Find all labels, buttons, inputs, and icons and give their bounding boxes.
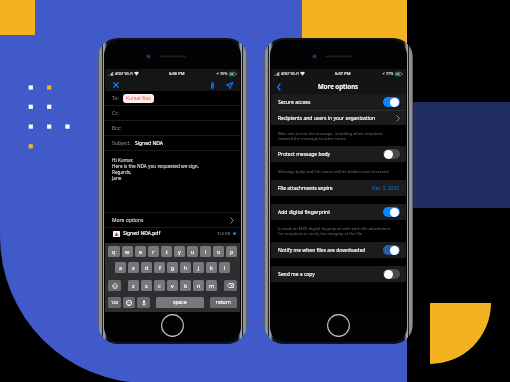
button[interactable]: q <box>108 246 120 257</box>
staticText: Cc: <box>112 110 119 117</box>
button[interactable]: v <box>167 280 178 291</box>
staticText: a <box>119 264 123 271</box>
staticText: Hi Kumar, <box>112 157 134 163</box>
staticText: 123 <box>111 300 119 306</box>
staticText: 76% <box>220 71 228 76</box>
staticText: Who can access the message, including wh… <box>278 131 383 136</box>
button[interactable]: Bcc: <box>112 121 234 135</box>
staticText: x <box>145 282 148 289</box>
staticText: i <box>205 248 207 255</box>
button[interactable]: d <box>141 262 152 273</box>
staticText: p <box>230 248 234 255</box>
button[interactable]: o <box>213 246 224 257</box>
button[interactable]: Dictate <box>137 297 150 308</box>
staticText: y <box>178 248 181 255</box>
button[interactable]: n <box>193 280 204 291</box>
button[interactable]: 123 <box>108 297 121 308</box>
button[interactable]: Notify me when files are downloaded <box>278 242 400 258</box>
button[interactable]: k <box>206 262 217 273</box>
button[interactable]: y <box>174 246 185 257</box>
button[interactable]: Secure access <box>278 94 400 110</box>
staticText: Protect message body <box>278 151 331 158</box>
button[interactable]: Recipients and users in your organizatio… <box>278 111 400 125</box>
staticText: Bcc: <box>112 125 122 132</box>
staticText: More options <box>318 82 359 90</box>
staticText: To: <box>112 95 119 102</box>
staticText: Add digital fingerprint <box>278 209 330 216</box>
staticText: Include an MD5 digital fingerprint with … <box>278 226 391 231</box>
button[interactable]: return <box>210 297 237 308</box>
staticText: Secure access <box>278 99 311 106</box>
staticText: File attachments expire <box>278 185 333 192</box>
staticText: m <box>209 282 215 289</box>
button[interactable]: c <box>154 280 165 291</box>
button[interactable]: x <box>141 280 152 291</box>
staticText: t <box>166 248 168 255</box>
button[interactable]: h <box>180 262 191 273</box>
button[interactable]: m <box>206 280 217 291</box>
button[interactable]: Backspace <box>224 280 237 291</box>
staticText: q <box>112 248 116 255</box>
button[interactable]: space <box>156 297 204 308</box>
staticText: f <box>159 264 161 271</box>
staticText: Kumar Rao <box>126 95 151 102</box>
button[interactable]: Add digital fingerprint <box>278 204 400 220</box>
button[interactable]: Protect message body <box>278 146 400 162</box>
button[interactable]: a <box>115 262 126 273</box>
button[interactable]: Emoji <box>123 297 135 308</box>
staticText: c <box>158 282 161 289</box>
button[interactable]: Send <box>224 80 234 90</box>
staticText: for recipients to verify the integrity o… <box>278 231 364 236</box>
staticText: Dec 3, 2020 <box>372 185 400 192</box>
button[interactable]: p <box>226 246 237 257</box>
button[interactable]: Back <box>273 81 284 92</box>
button[interactable]: t <box>161 246 172 257</box>
button[interactable]: Shift <box>108 280 121 291</box>
button[interactable]: z <box>128 280 139 291</box>
button[interactable]: l <box>219 262 230 273</box>
staticText: Notify me when files are downloaded <box>278 247 366 254</box>
staticText: Here is the NDA you requested we sign. <box>112 163 200 169</box>
button[interactable]: j <box>193 262 204 273</box>
staticText: u <box>191 248 195 255</box>
staticText: Message body and file names will be hidd… <box>278 169 390 174</box>
staticText: Jane <box>112 175 122 181</box>
staticText: Signed NDA <box>135 140 163 147</box>
button[interactable]: i <box>200 246 211 257</box>
staticText: e <box>139 248 143 255</box>
button[interactable]: More options <box>112 213 234 227</box>
staticText: forward the message to other users. <box>278 136 347 141</box>
button[interactable]: w <box>122 246 133 257</box>
staticText: More options <box>112 217 144 224</box>
button[interactable]: Close <box>111 80 121 90</box>
button[interactable]: s <box>128 262 139 273</box>
staticText: s <box>132 264 135 271</box>
staticText: Regards, <box>112 169 132 175</box>
button[interactable]: g <box>167 262 178 273</box>
button[interactable]: f <box>154 262 165 273</box>
button[interactable]: Cc: <box>112 106 234 120</box>
button[interactable]: Send me a copy <box>278 266 400 282</box>
staticText: Send me a copy <box>278 271 315 278</box>
staticText: w <box>125 248 130 255</box>
staticText: AT&T Wi-Fi <box>115 71 133 76</box>
button[interactable]: Subject: <box>112 136 234 150</box>
staticText: Subject: <box>112 140 131 147</box>
staticText: b <box>184 282 188 289</box>
staticText: d <box>145 264 149 271</box>
staticText: v <box>171 282 174 289</box>
button[interactable]: e <box>135 246 146 257</box>
staticText: Signed NDA.pdf <box>123 230 161 237</box>
button[interactable]: Dictate <box>207 80 217 90</box>
button[interactable]: b <box>180 280 191 291</box>
button[interactable]: r <box>148 246 159 257</box>
staticText: AT&T Wi-Fi <box>281 71 299 76</box>
button[interactable]: File attachments expire <box>278 180 400 196</box>
staticText: l <box>224 264 226 271</box>
button[interactable]: u <box>187 246 198 257</box>
staticText: k <box>210 264 213 271</box>
staticText: z <box>132 282 135 289</box>
staticText: n <box>197 282 201 289</box>
button[interactable]: To: <box>112 91 234 105</box>
staticText: Recipients and users in your organizatio… <box>278 115 376 122</box>
